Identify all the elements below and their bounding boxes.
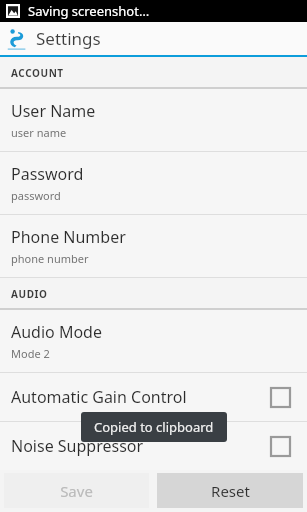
staticText: Copied to clipboard bbox=[94, 418, 214, 436]
staticText: Automatic Gain Control bbox=[11, 386, 187, 408]
button[interactable]: Noise Suppressor bbox=[0, 422, 307, 470]
staticText: user name bbox=[11, 125, 67, 140]
staticText: Settings bbox=[36, 27, 101, 50]
button[interactable]: Password bbox=[0, 152, 307, 215]
staticText: Reset bbox=[211, 481, 250, 501]
staticText: Phone Number bbox=[11, 226, 126, 248]
button[interactable]: Phone Number bbox=[0, 215, 307, 278]
staticText: Audio Mode bbox=[11, 321, 102, 343]
staticText: password bbox=[11, 188, 61, 203]
staticText: Password bbox=[11, 163, 84, 185]
staticText: AUDIO bbox=[11, 287, 48, 301]
staticText: phone number bbox=[11, 251, 89, 266]
button[interactable]: Automatic Gain Control bbox=[0, 373, 307, 421]
staticText: Saving screenshot… bbox=[28, 2, 150, 20]
staticText: Mode 2 bbox=[11, 346, 50, 361]
staticText: Save bbox=[60, 481, 93, 501]
staticText: Noise Suppressor bbox=[11, 435, 144, 457]
button[interactable]: Save bbox=[4, 473, 149, 508]
staticText: ACCOUNT bbox=[11, 66, 64, 80]
button[interactable]: Audio Mode bbox=[0, 310, 307, 373]
button[interactable]: Reset bbox=[157, 473, 303, 508]
button[interactable]: User Name bbox=[0, 89, 307, 152]
staticText: User Name bbox=[11, 100, 96, 122]
